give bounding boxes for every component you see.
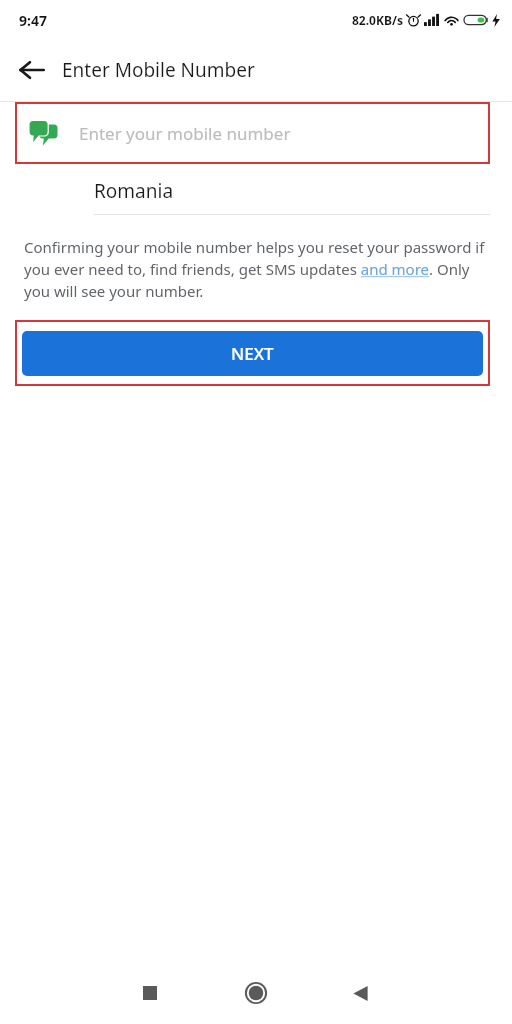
- staticText: Romania: [94, 178, 174, 204]
- button[interactable]: Romania: [94, 178, 490, 204]
- button[interactable]: Recent apps: [128, 971, 172, 1015]
- staticText: Enter your mobile number: [79, 122, 291, 145]
- button[interactable]: NEXT: [22, 331, 483, 376]
- staticText: Confirming your mobile number helps you …: [24, 237, 492, 302]
- button[interactable]: Back: [338, 971, 382, 1015]
- button[interactable]: Back: [10, 48, 54, 92]
- button[interactable]: Enter your mobile number: [17, 102, 488, 164]
- staticText: 9:47: [19, 11, 47, 30]
- staticText: NEXT: [231, 342, 274, 365]
- staticText: Enter Mobile Number: [62, 57, 255, 83]
- button[interactable]: Home: [234, 971, 278, 1015]
- staticText: 82.0KB/s: [352, 12, 403, 28]
